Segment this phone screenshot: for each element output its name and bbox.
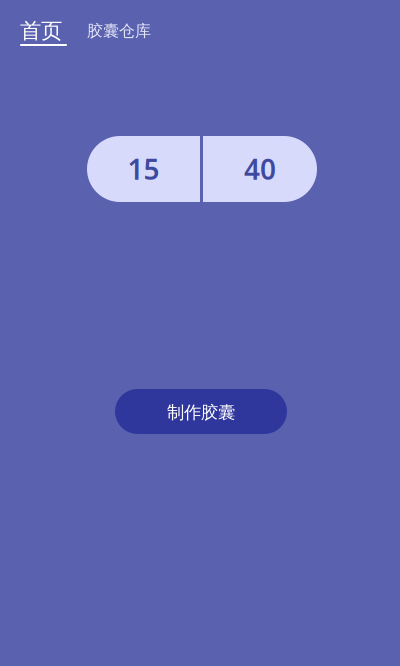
button[interactable]: 15 (87, 136, 200, 202)
staticText: 制作胶囊 (167, 402, 235, 423)
staticText: 首页 (20, 18, 62, 44)
button[interactable]: 首页 (20, 20, 66, 46)
button[interactable]: 制作胶囊 (115, 389, 287, 434)
button[interactable]: 40 (203, 136, 317, 202)
staticText: 胶囊仓库 (87, 21, 151, 41)
button[interactable]: 胶囊仓库 (87, 22, 151, 40)
staticText: 15 (127, 150, 159, 188)
staticText: 40 (244, 150, 276, 188)
